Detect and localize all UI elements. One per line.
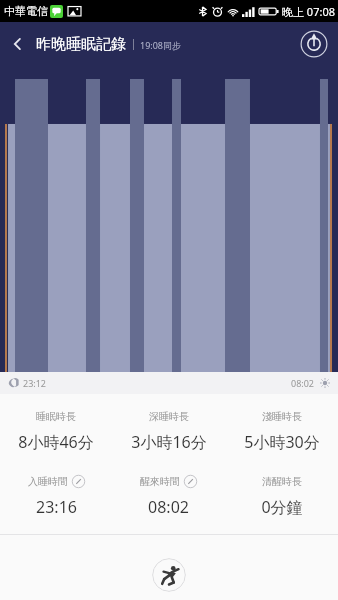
button[interactable]: Start run	[152, 558, 186, 592]
staticText: 中華電信	[4, 4, 48, 18]
staticText: 23:16	[36, 496, 77, 518]
staticText: 5小時30分	[244, 431, 320, 453]
staticText: 08:02	[291, 377, 315, 389]
staticText: 醒來時間	[140, 475, 180, 488]
staticText: 08:02	[148, 496, 189, 518]
staticText: 昨晚睡眠記錄	[36, 35, 126, 54]
staticText: 23:12	[23, 377, 47, 389]
staticText: 深睡時長	[149, 410, 189, 423]
staticText: 8小時46分	[18, 431, 94, 453]
staticText: 晚上 07:08	[282, 4, 335, 19]
button[interactable]: Share	[300, 30, 328, 58]
button[interactable]: Back	[0, 26, 36, 62]
other: Edit	[184, 475, 197, 488]
staticText: 淺睡時長	[262, 410, 302, 423]
staticText: 睡眠時長	[36, 410, 76, 423]
button[interactable]: 醒來時間	[112, 475, 225, 518]
staticText: 0分鐘	[261, 496, 303, 518]
staticText: 入睡時間	[28, 475, 68, 488]
button[interactable]: 入睡時間	[0, 475, 112, 518]
staticText: 清醒時長	[262, 475, 302, 488]
other: Edit	[72, 475, 85, 488]
staticText: 3小時16分	[131, 431, 207, 453]
staticText: 19:08同步	[140, 39, 182, 51]
